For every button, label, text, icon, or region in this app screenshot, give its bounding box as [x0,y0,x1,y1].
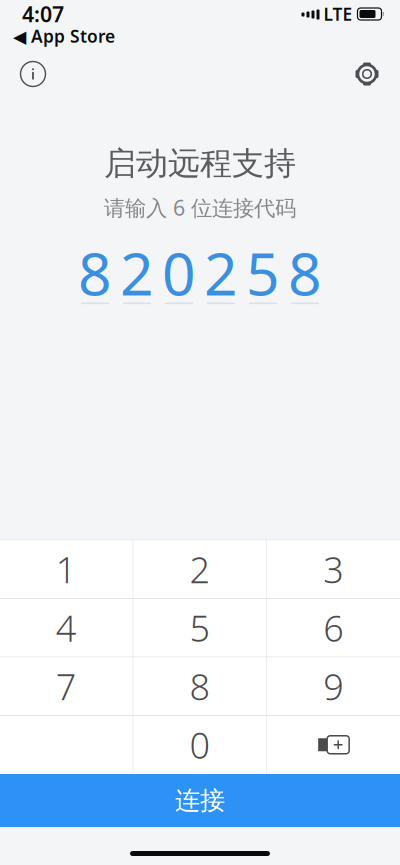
staticText: 8 [288,234,322,312]
staticText: 6 [323,604,344,652]
button[interactable]: 7 [0,657,133,715]
staticText: 启动远程支持 [104,144,296,183]
staticText: 0 [189,721,210,769]
button[interactable]: Delete [267,716,400,773]
staticText: 4 [56,604,77,652]
staticText: 5 [246,234,280,312]
button[interactable]: 9 [267,657,400,715]
staticText: 2 [189,545,210,593]
staticText: 2 [120,234,154,312]
button[interactable]: 5 [134,599,266,656]
button[interactable]: 6 [267,599,400,656]
button[interactable]: 2 [134,540,266,598]
staticText: 8 [78,234,112,312]
staticText: 9 [323,662,344,710]
staticText: 请输入 6 位连接代码 [104,193,296,222]
button[interactable]: Settings [343,50,391,98]
button[interactable]: 0 [134,716,266,773]
button[interactable]: 3 [267,540,400,598]
staticText: 2 [204,234,238,312]
staticText: 3 [323,545,344,593]
staticText: ◀ App Store [13,24,115,47]
button[interactable]: 1 [0,540,133,598]
button[interactable]: Information [9,50,57,98]
staticText: 1 [56,545,77,593]
staticText: LTE [323,2,352,25]
staticText: 4:07 [22,0,64,28]
staticText: 0 [162,234,196,312]
staticText: 8 [189,662,210,710]
button[interactable]: 4 [0,599,133,656]
staticText: 7 [56,662,77,710]
button[interactable]: 8 [134,657,266,715]
staticText: 连接 [175,785,225,816]
staticText: 5 [189,604,210,652]
button[interactable]: 连接 [0,774,400,827]
